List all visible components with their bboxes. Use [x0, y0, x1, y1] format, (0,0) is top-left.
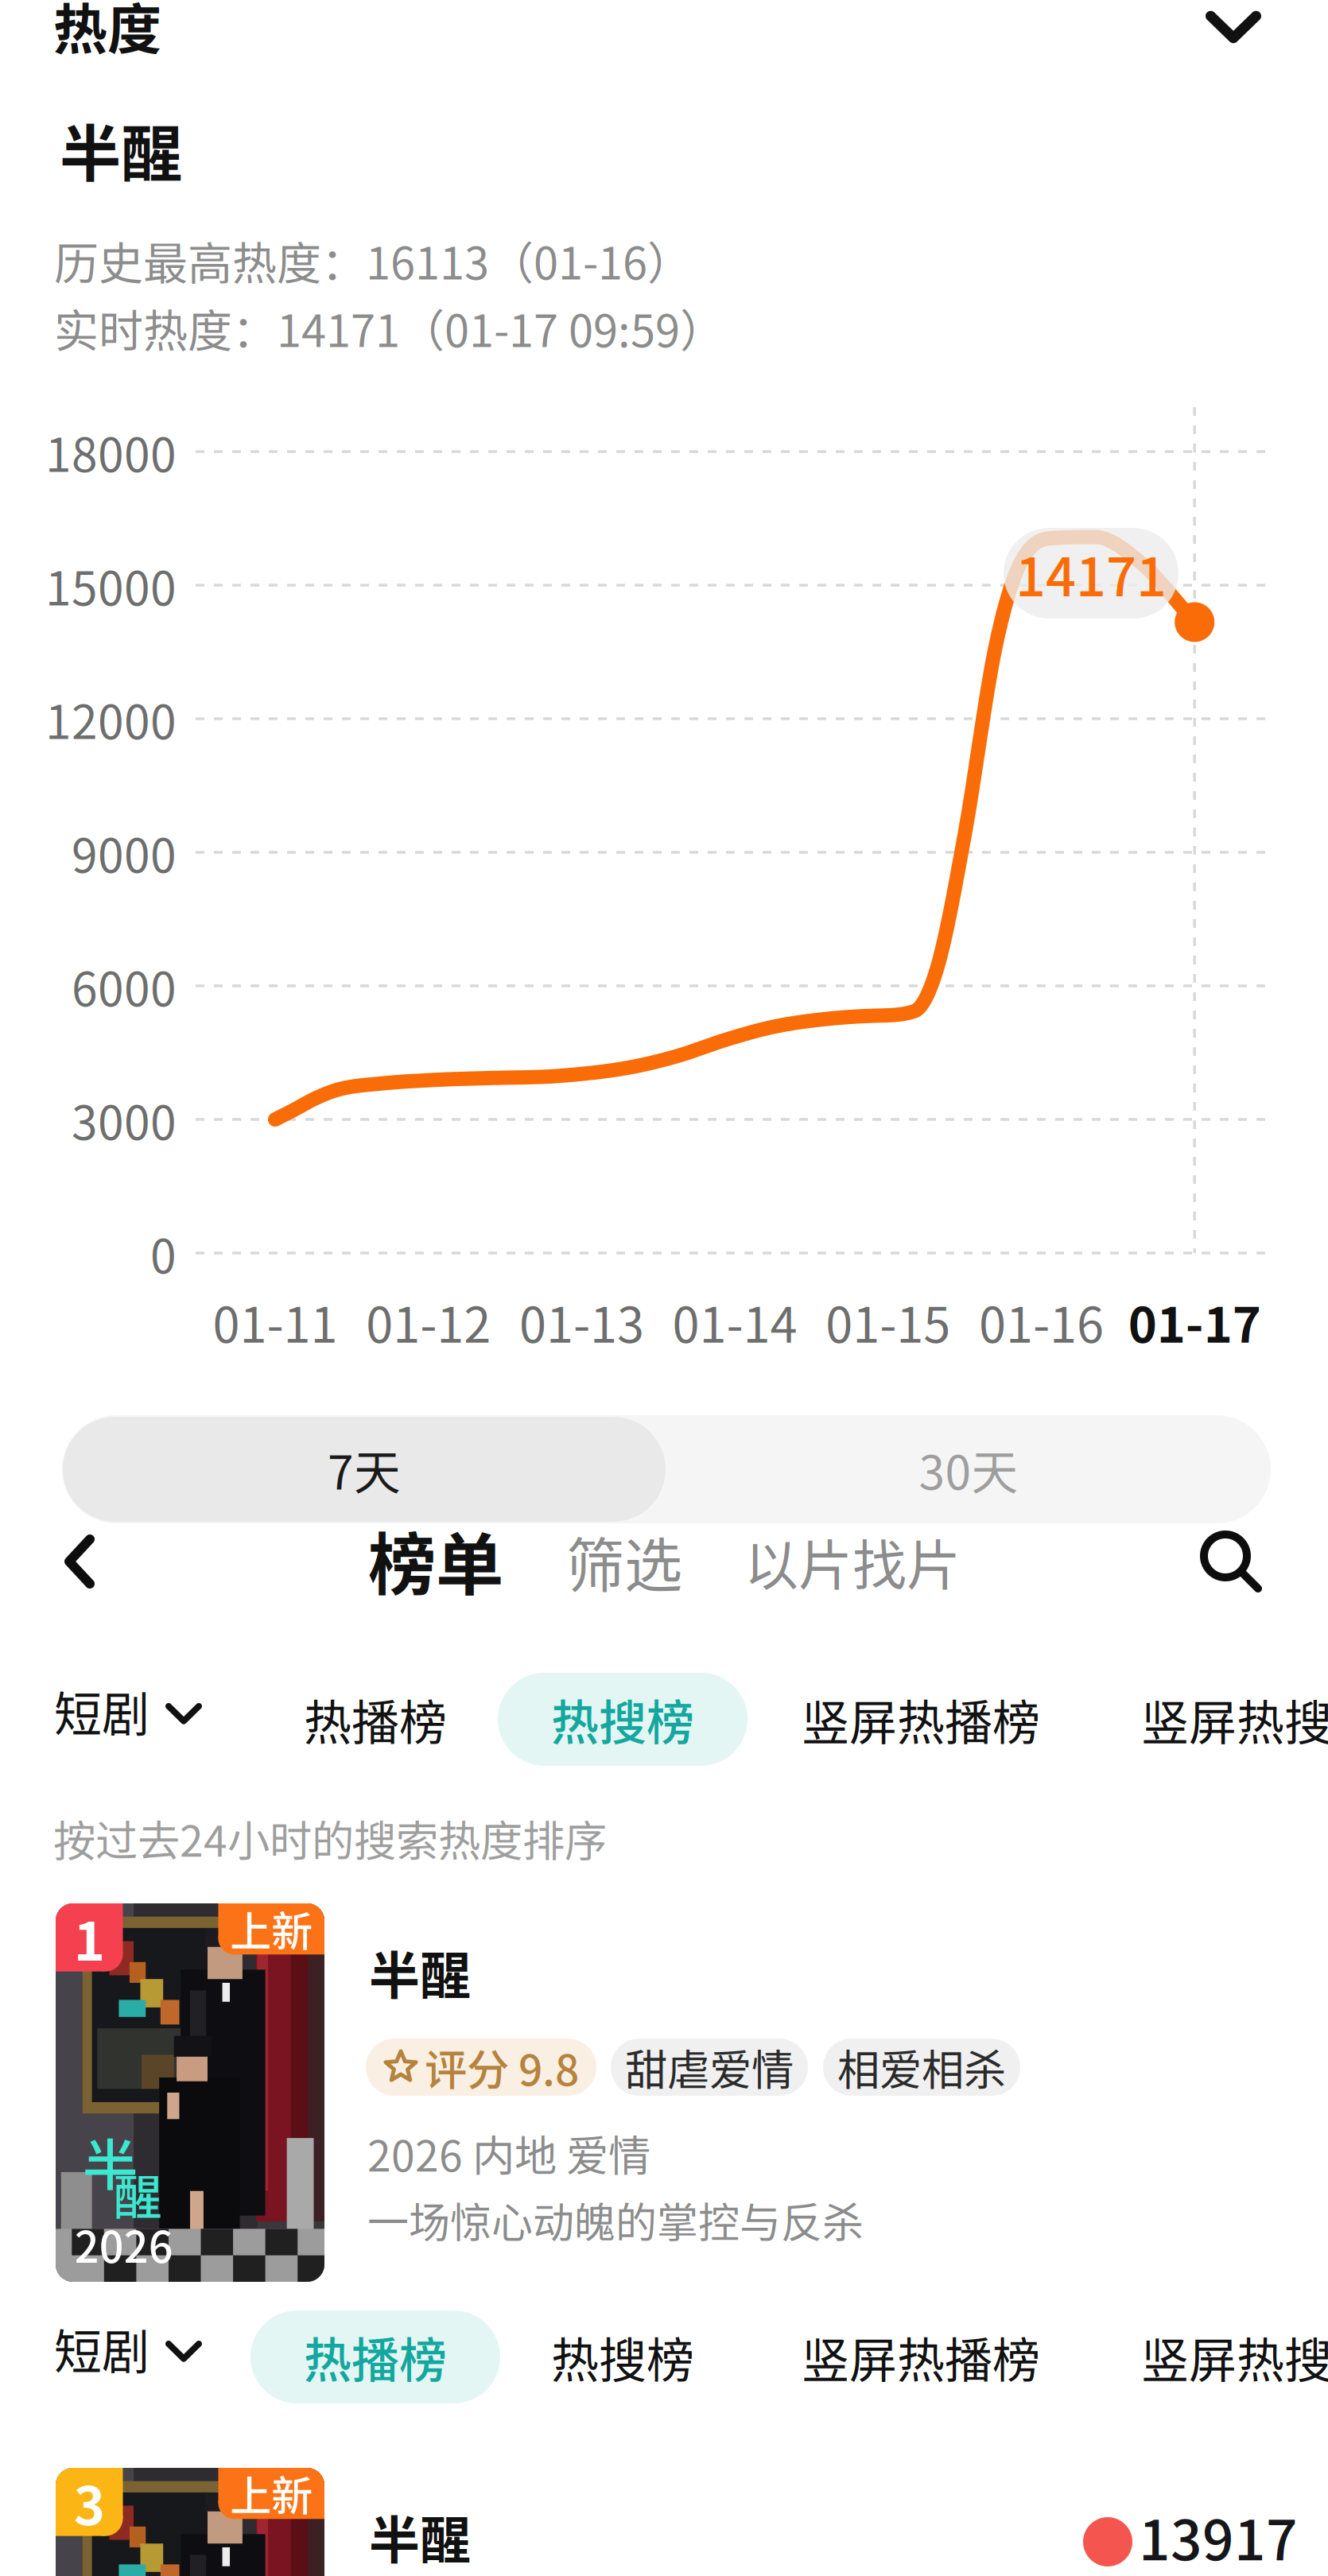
- button[interactable]: 半: [56, 2468, 1272, 2576]
- button[interactable]: 以片找片: [733, 1525, 972, 1598]
- staticText: 半: [83, 2121, 138, 2201]
- button[interactable]: 半: [56, 1903, 1272, 2282]
- staticText: 2026: [75, 2213, 173, 2275]
- staticText: 一场惊心动魄的掌控与反杀: [367, 2190, 864, 2250]
- staticText: 评分 9.8: [425, 2036, 579, 2098]
- staticText: 热度: [53, 0, 161, 65]
- button[interactable]: 筛选: [557, 1525, 692, 1598]
- staticText: 14171: [1015, 535, 1167, 612]
- staticText: 竖屏热搜榜: [1141, 1685, 1328, 1754]
- staticText: 热搜榜: [551, 2322, 694, 2392]
- staticText: 热搜榜: [551, 1685, 694, 1754]
- button[interactable]: 短剧: [54, 2304, 213, 2396]
- staticText: 0: [150, 1219, 177, 1287]
- staticText: 30天: [919, 1435, 1018, 1503]
- button[interactable]: Collapse: [1182, 0, 1285, 59]
- button[interactable]: 热搜榜: [498, 2310, 747, 2403]
- staticText: 榜单: [368, 1511, 503, 1609]
- staticText: 竖屏热播榜: [802, 1685, 1040, 1754]
- button[interactable]: 热播榜: [250, 1673, 500, 1766]
- staticText: 01-11: [213, 1286, 338, 1357]
- staticText: 实时热度：14171（01-17 09:59）: [54, 295, 724, 360]
- staticText: 半醒: [369, 2499, 471, 2573]
- staticText: 上新: [230, 1899, 313, 1959]
- staticText: 历史最高热度：16113（01-16）: [54, 228, 692, 292]
- staticText: 01-13: [519, 1286, 644, 1357]
- staticText: 01-15: [826, 1286, 951, 1357]
- button[interactable]: 30天: [667, 1417, 1270, 1522]
- staticText: 相爱相杀: [837, 2036, 1006, 2098]
- button[interactable]: 热搜榜: [498, 1673, 747, 1766]
- staticText: 上新: [230, 2463, 313, 2523]
- staticText: 醒: [113, 2159, 162, 2229]
- staticText: 竖屏热播榜: [802, 2322, 1040, 2392]
- staticText: 按过去24小时的搜索热度排序: [53, 1807, 607, 1869]
- staticText: 01-16: [979, 1286, 1104, 1357]
- staticText: 2026 内地 爱情: [367, 2122, 650, 2184]
- staticText: 热播榜: [304, 2322, 447, 2392]
- staticText: 筛选: [566, 1519, 682, 1604]
- staticText: 13917: [1139, 2496, 1298, 2576]
- staticText: 15000: [45, 551, 177, 619]
- staticText: 半醒: [60, 105, 182, 194]
- staticText: 9000: [72, 819, 177, 886]
- staticText: 01-12: [366, 1286, 491, 1357]
- button[interactable]: 7天: [63, 1417, 666, 1522]
- button[interactable]: 竖屏热播榜: [750, 2310, 1092, 2403]
- staticText: 短剧: [54, 2314, 149, 2383]
- staticText: 竖屏热搜榜: [1141, 2322, 1328, 2392]
- button[interactable]: 竖屏热播榜: [750, 1673, 1092, 1766]
- button[interactable]: 竖屏热搜榜: [1089, 1673, 1328, 1766]
- button[interactable]: 竖屏热搜榜: [1089, 2310, 1328, 2403]
- staticText: 7天: [328, 1435, 401, 1503]
- staticText: 热播榜: [304, 1685, 447, 1754]
- staticText: 半醒: [369, 1935, 471, 2009]
- button[interactable]: Back: [32, 1525, 127, 1598]
- staticText: 3: [74, 2464, 105, 2540]
- staticText: 01-14: [672, 1286, 797, 1357]
- staticText: 3000: [72, 1086, 177, 1153]
- button[interactable]: 短剧: [54, 1666, 213, 1759]
- staticText: 短剧: [54, 1676, 149, 1746]
- button[interactable]: Search: [1189, 1527, 1276, 1600]
- staticText: 1: [74, 1899, 105, 1976]
- staticText: 以片找片: [744, 1522, 961, 1601]
- staticText: 12000: [45, 685, 177, 753]
- staticText: 01-17: [1128, 1286, 1261, 1357]
- button[interactable]: 榜单: [356, 1523, 515, 1596]
- staticText: 甜虐爱情: [625, 2036, 794, 2098]
- staticText: 6000: [72, 952, 177, 1020]
- button[interactable]: 热播榜: [250, 2310, 500, 2403]
- staticText: 18000: [45, 418, 177, 485]
